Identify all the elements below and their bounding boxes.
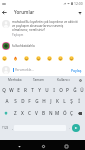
- staticText: Ğ: [73, 87, 77, 93]
- button[interactable]: Back: [0, 7, 9, 17]
- button[interactable]: Emoji laugh: [36, 56, 41, 61]
- button[interactable]: B: [40, 107, 47, 119]
- button[interactable]: A: [3, 95, 11, 107]
- button[interactable]: E: [15, 84, 22, 96]
- button[interactable]: Ş: [68, 95, 75, 107]
- button[interactable]: ?123: [0, 121, 11, 135]
- button[interactable]: Ç: [68, 107, 75, 119]
- button[interactable]: Ü: [78, 84, 85, 96]
- button[interactable]: Kullanıcı: [51, 76, 75, 84]
- staticText: C: [28, 110, 31, 116]
- staticText: Yorumlar: [14, 9, 35, 15]
- staticText: Y: [38, 87, 41, 93]
- button[interactable]: G: [33, 95, 40, 107]
- staticText: B: [42, 110, 46, 116]
- staticText: D: [21, 98, 25, 104]
- staticText: ?123: [2, 126, 9, 130]
- button[interactable]: Comma: [11, 121, 14, 135]
- button[interactable]: W: [8, 84, 15, 96]
- staticText: fullsohbatdahla: [12, 44, 35, 48]
- button[interactable]: T: [29, 84, 36, 96]
- button[interactable]: O: [57, 84, 64, 96]
- staticText: H: [42, 98, 46, 104]
- button[interactable]: İ: [75, 95, 82, 107]
- button[interactable]: V: [33, 107, 40, 119]
- button[interactable]: Backspace: [75, 107, 85, 119]
- staticText: I: [53, 87, 55, 93]
- staticText: Paylaş: [71, 68, 82, 73]
- staticText: İ: [78, 98, 80, 104]
- staticText: G: [35, 98, 39, 104]
- staticText: F: [28, 98, 31, 104]
- button[interactable]: Send: [72, 124, 80, 132]
- staticText: Tamam: [33, 78, 45, 82]
- staticText: U: [45, 87, 49, 93]
- button[interactable]: fullsohbatdahla: [0, 42, 85, 50]
- staticText: Q: [2, 87, 6, 93]
- staticText: Ü: [80, 87, 84, 93]
- button[interactable]: Keyboard settings: [75, 76, 85, 84]
- button[interactable]: Emoji wink: [69, 56, 74, 61]
- button[interactable]: Merhaba: [3, 76, 27, 84]
- staticText: N: [49, 110, 53, 116]
- button[interactable]: C: [26, 107, 33, 119]
- button[interactable]: Emoji smile: [24, 56, 29, 61]
- button[interactable]: Tamam: [27, 76, 51, 84]
- button[interactable]: Filter: [75, 8, 84, 17]
- button[interactable]: Emoji sad: [47, 56, 52, 61]
- staticText: Paylaşım: [12, 33, 24, 37]
- staticText: S: [14, 98, 17, 104]
- staticText: X: [21, 110, 24, 116]
- staticText: ,: [12, 126, 13, 130]
- button[interactable]: X: [19, 107, 26, 119]
- staticText: L: [63, 98, 66, 104]
- button[interactable]: Z: [11, 107, 19, 119]
- button[interactable]: mahsbat Bu kıyafetin çok kaçırdınız ve a…: [0, 20, 85, 37]
- button[interactable]: Y: [36, 84, 43, 96]
- staticText: .: [69, 126, 70, 130]
- staticText: P: [66, 87, 69, 93]
- button[interactable]: S: [11, 95, 19, 107]
- button[interactable]: D: [19, 95, 26, 107]
- button[interactable]: Ğ: [71, 84, 78, 96]
- staticText: Ç: [70, 110, 73, 116]
- button[interactable]: L: [61, 95, 68, 107]
- staticText: W: [9, 87, 14, 93]
- staticText: Yorum ekle...: [15, 68, 34, 72]
- button[interactable]: R: [22, 84, 29, 96]
- staticText: mahsbat Bu kıyafetin çok kaçırdınız ve a…: [12, 20, 80, 32]
- button[interactable]: F: [26, 95, 33, 107]
- button[interactable]: Back: [14, 141, 24, 150]
- button[interactable]: Recents: [61, 141, 71, 150]
- button[interactable]: J: [47, 95, 54, 107]
- button[interactable]: Q: [0, 84, 8, 96]
- button[interactable]: I: [50, 84, 57, 96]
- button[interactable]: Emoji surprised: [58, 56, 63, 61]
- button[interactable]: Home: [38, 141, 48, 150]
- staticText: V: [35, 110, 38, 116]
- staticText: O: [59, 87, 63, 93]
- button[interactable]: Paylaş: [70, 67, 83, 74]
- staticText: T: [31, 87, 34, 93]
- button[interactable]: N: [47, 107, 54, 119]
- staticText: E: [17, 87, 20, 93]
- button[interactable]: Shift: [0, 107, 11, 119]
- button[interactable]: K: [54, 95, 61, 107]
- staticText: Ş: [70, 98, 73, 104]
- staticText: K: [56, 98, 59, 104]
- staticText: 12:00: [74, 1, 83, 6]
- staticText: J: [50, 98, 52, 104]
- staticText: Z: [14, 110, 17, 116]
- staticText: Ö: [63, 110, 67, 116]
- staticText: Kullanıcı: [57, 78, 70, 82]
- button[interactable]: Ö: [61, 107, 68, 119]
- button[interactable]: P: [64, 84, 71, 96]
- staticText: Merhaba: [8, 78, 22, 82]
- button[interactable]: Emoji fire: [13, 56, 18, 61]
- button[interactable]: U: [43, 84, 50, 96]
- button[interactable]: Emoji heart eyes: [2, 56, 7, 61]
- button[interactable]: M: [54, 107, 61, 119]
- button[interactable]: H: [40, 95, 47, 107]
